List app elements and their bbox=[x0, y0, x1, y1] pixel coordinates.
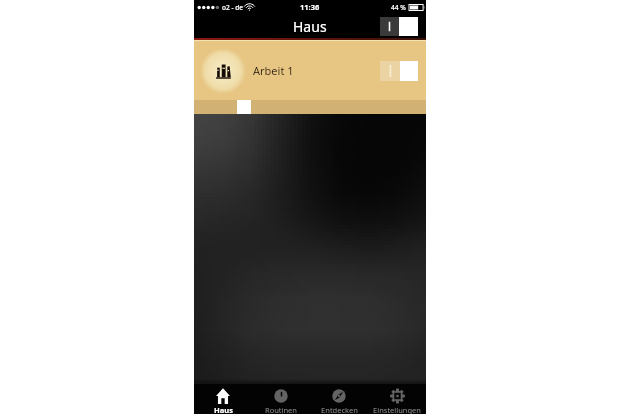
staticText: Arbeit 1 bbox=[253, 63, 294, 78]
button[interactable]: Routinen bbox=[252, 384, 310, 414]
button[interactable]: Entdecken bbox=[310, 384, 368, 414]
button[interactable]: Einstellungen bbox=[368, 384, 426, 414]
button[interactable]: Toggle Arbeit 1 bbox=[380, 61, 418, 81]
staticText: Routinen bbox=[265, 405, 297, 414]
staticText: Haus bbox=[293, 17, 327, 36]
button[interactable]: Power toggle bbox=[380, 17, 418, 36]
staticText: o2 - de bbox=[222, 3, 243, 12]
button[interactable]: Arbeit 1 bbox=[194, 41, 426, 100]
staticText: Einstellungen bbox=[373, 405, 421, 414]
button[interactable]: Haus bbox=[194, 384, 252, 414]
staticText: 11:36 bbox=[300, 2, 320, 12]
staticText: 44 % bbox=[391, 3, 406, 12]
staticText: Haus bbox=[214, 405, 233, 414]
staticText: Entdecken bbox=[321, 405, 358, 414]
